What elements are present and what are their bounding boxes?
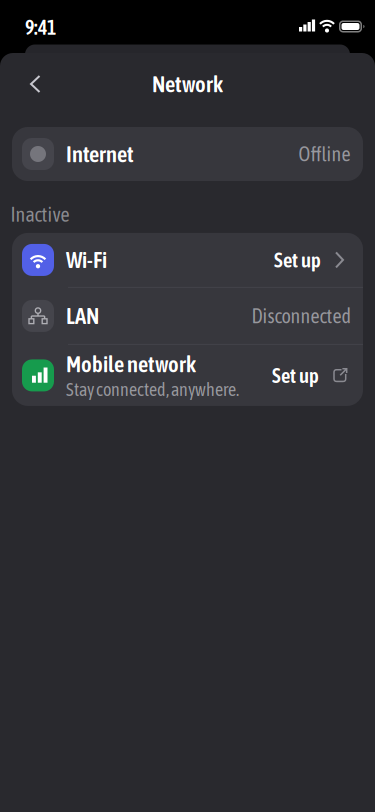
staticText: Inactive	[10, 203, 69, 226]
staticText: Mobile network	[66, 351, 196, 377]
staticText: Disconnected	[251, 304, 350, 327]
button[interactable]: Mobile network	[12, 345, 363, 406]
button[interactable]: Wi-Fi	[12, 233, 363, 287]
staticText: LAN	[66, 303, 99, 329]
staticText: Internet	[66, 141, 134, 167]
staticText: Wi-Fi	[66, 247, 107, 273]
staticText: Set up	[272, 364, 319, 387]
staticText: Set up	[274, 248, 321, 272]
staticText: Stay connected, anywhere.	[66, 379, 239, 400]
staticText: Network	[152, 71, 223, 97]
button[interactable]: LAN	[12, 288, 363, 344]
staticText: 9:41	[25, 16, 56, 39]
button[interactable]: Internet	[12, 127, 363, 181]
staticText: Offline	[298, 142, 350, 165]
button[interactable]: Back	[0, 65, 41, 103]
